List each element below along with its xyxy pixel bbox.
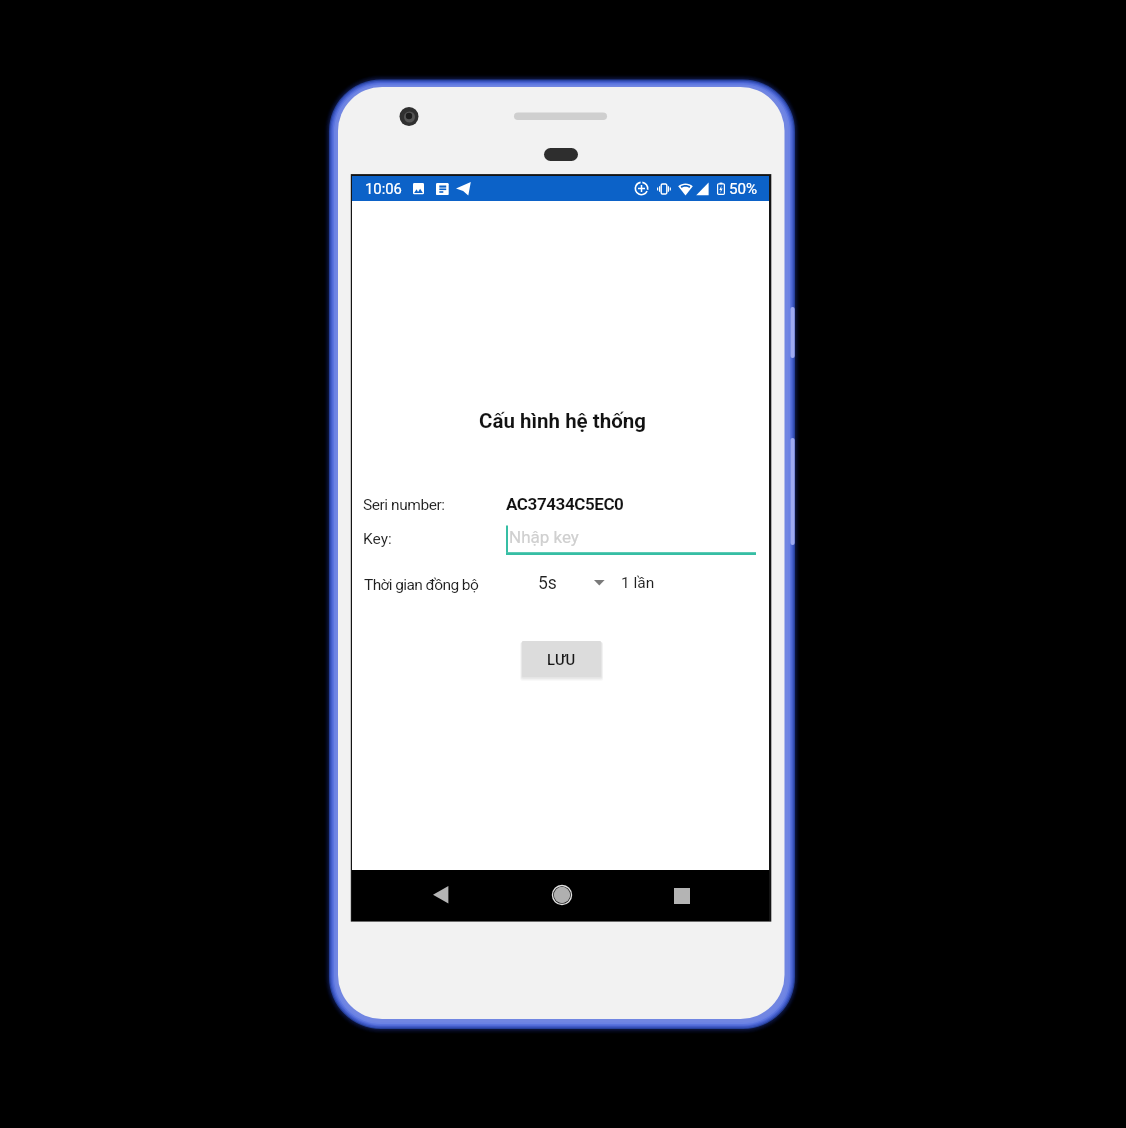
staticText: 10:06 xyxy=(365,180,402,197)
button[interactable]: Key input field xyxy=(506,519,756,555)
button[interactable]: Home xyxy=(501,870,621,921)
staticText: 50% xyxy=(729,180,758,198)
staticText: Cấu hình hệ thống xyxy=(354,409,771,433)
staticText: AC37434C5EC0 xyxy=(506,494,624,514)
staticText: 5s xyxy=(538,573,557,594)
staticText: Key: xyxy=(363,530,392,548)
button[interactable]: Recent apps xyxy=(621,870,741,921)
button[interactable]: Sync interval: 5s xyxy=(538,571,605,595)
staticText: 1 lần xyxy=(621,574,655,592)
button[interactable]: Back xyxy=(380,870,501,921)
staticText: LƯU xyxy=(547,651,576,668)
staticText: Nhập key xyxy=(509,527,579,547)
staticText: Seri number: xyxy=(363,496,445,514)
button[interactable]: LƯU xyxy=(522,641,601,677)
staticText: Thời gian đồng bộ xyxy=(364,576,479,594)
